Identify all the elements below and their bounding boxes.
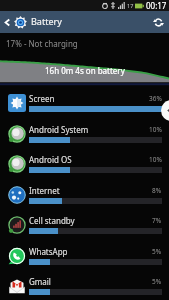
staticText: 5% bbox=[152, 277, 162, 286]
staticText: 17% - Not charging bbox=[6, 38, 78, 49]
button[interactable]: Gmail bbox=[0, 271, 169, 300]
button[interactable]: Navigate up bbox=[0, 11, 14, 33]
staticText: Android System bbox=[29, 124, 89, 135]
button[interactable]: Android System bbox=[0, 119, 169, 150]
staticText: 00:17 bbox=[146, 0, 167, 11]
staticText: 8% bbox=[152, 186, 162, 195]
staticText: Cell standby bbox=[29, 215, 75, 226]
staticText: Internet bbox=[29, 185, 60, 196]
staticText: Android OS bbox=[29, 154, 72, 165]
staticText: 16h 0m 4s on battery bbox=[45, 65, 125, 76]
staticText: 17 bbox=[127, 2, 134, 9]
button[interactable]: Internet bbox=[0, 180, 169, 211]
staticText: 10% bbox=[149, 155, 162, 164]
button[interactable]: Android OS bbox=[0, 149, 169, 180]
staticText: WhatsApp bbox=[29, 246, 68, 257]
staticText: 5% bbox=[152, 247, 162, 256]
staticText: 10% bbox=[149, 125, 162, 134]
button[interactable]: Cell standby bbox=[0, 210, 169, 241]
staticText: Screen bbox=[29, 93, 55, 104]
button[interactable]: WhatsApp bbox=[0, 241, 169, 272]
button[interactable]: Screen bbox=[0, 88, 169, 119]
button[interactable]: Refresh bbox=[147, 11, 169, 33]
staticText: 7% bbox=[152, 216, 162, 225]
staticText: Battery bbox=[31, 15, 62, 27]
staticText: Gmail bbox=[29, 276, 51, 287]
staticText: 36% bbox=[149, 94, 162, 103]
